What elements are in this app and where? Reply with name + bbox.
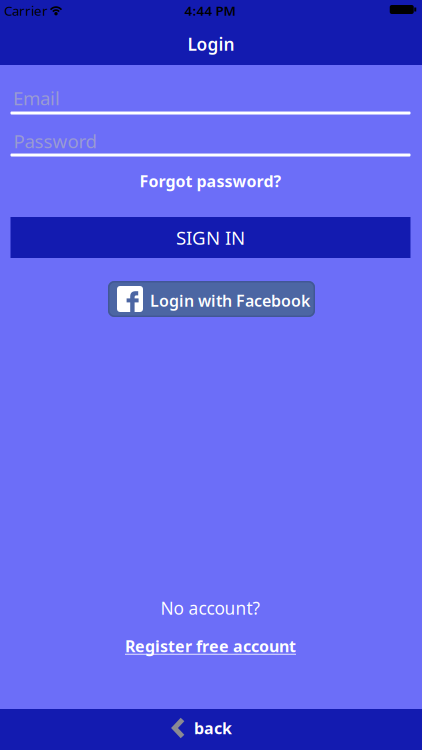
button[interactable]: Email <box>10 85 410 113</box>
staticText: Login <box>187 32 234 55</box>
button[interactable]: Forgot password? <box>139 170 281 192</box>
button[interactable]: Back <box>172 717 232 739</box>
button[interactable]: Login with Facebook <box>108 281 315 317</box>
staticText: Forgot password? <box>139 170 281 192</box>
staticText: Email <box>13 86 60 110</box>
staticText: SIGN IN <box>176 225 245 250</box>
staticText: No account? <box>160 596 260 619</box>
staticText: Login with Facebook <box>150 290 310 311</box>
staticText: Register free account <box>125 635 296 657</box>
staticText: Password <box>13 129 96 153</box>
staticText: back <box>194 717 232 739</box>
button[interactable]: Password <box>10 128 410 156</box>
staticText: Carrier <box>4 2 48 19</box>
button[interactable]: SIGN IN <box>10 217 410 258</box>
button[interactable]: Register free account <box>125 635 296 657</box>
staticText: 4:44 PM <box>184 2 235 19</box>
